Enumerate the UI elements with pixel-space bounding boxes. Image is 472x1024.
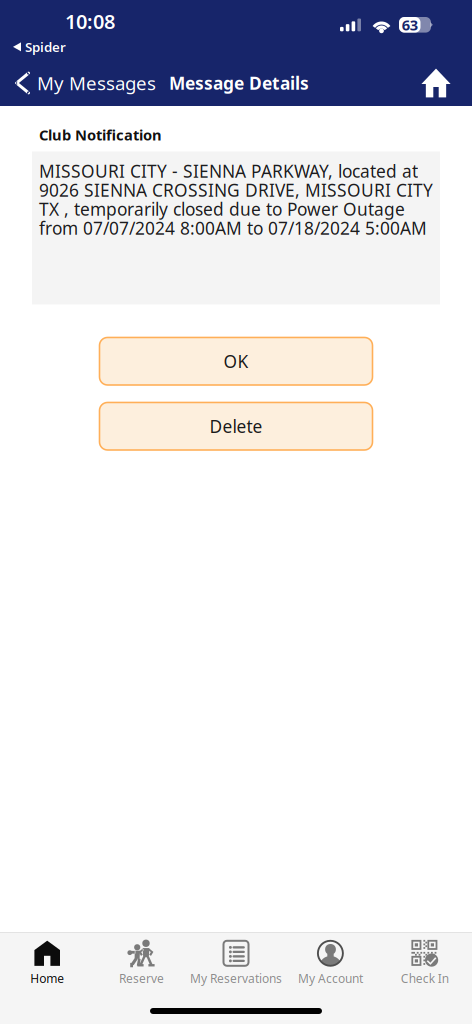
staticText: Spider [25, 38, 66, 56]
button[interactable]: Delete [99, 402, 372, 450]
staticText: MISSOURI CITY - SIENNA PARKWAY, located … [39, 159, 433, 240]
button[interactable]: My Messages [0, 60, 169, 106]
button[interactable]: OK [99, 337, 372, 385]
staticText: Delete [209, 415, 262, 438]
staticText: My Account [298, 970, 363, 986]
staticText: OK [223, 350, 248, 373]
staticText: Message Details [169, 71, 309, 94]
staticText: Reserve [119, 970, 164, 986]
staticText: My Reservations [190, 970, 282, 986]
button[interactable]: Reserve [94, 933, 189, 991]
staticText: 63 [402, 15, 418, 35]
button[interactable]: My Account [283, 933, 378, 991]
button[interactable]: My Reservations [189, 933, 283, 991]
button[interactable]: Check In [378, 933, 472, 991]
button[interactable]: Home [0, 933, 94, 991]
button[interactable]: Home [411, 60, 461, 106]
staticText: My Messages [37, 71, 156, 95]
staticText: Home [30, 970, 64, 986]
staticText: 10:08 [65, 8, 115, 35]
staticText: Club Notification [39, 125, 162, 144]
staticText: Check In [401, 970, 449, 986]
